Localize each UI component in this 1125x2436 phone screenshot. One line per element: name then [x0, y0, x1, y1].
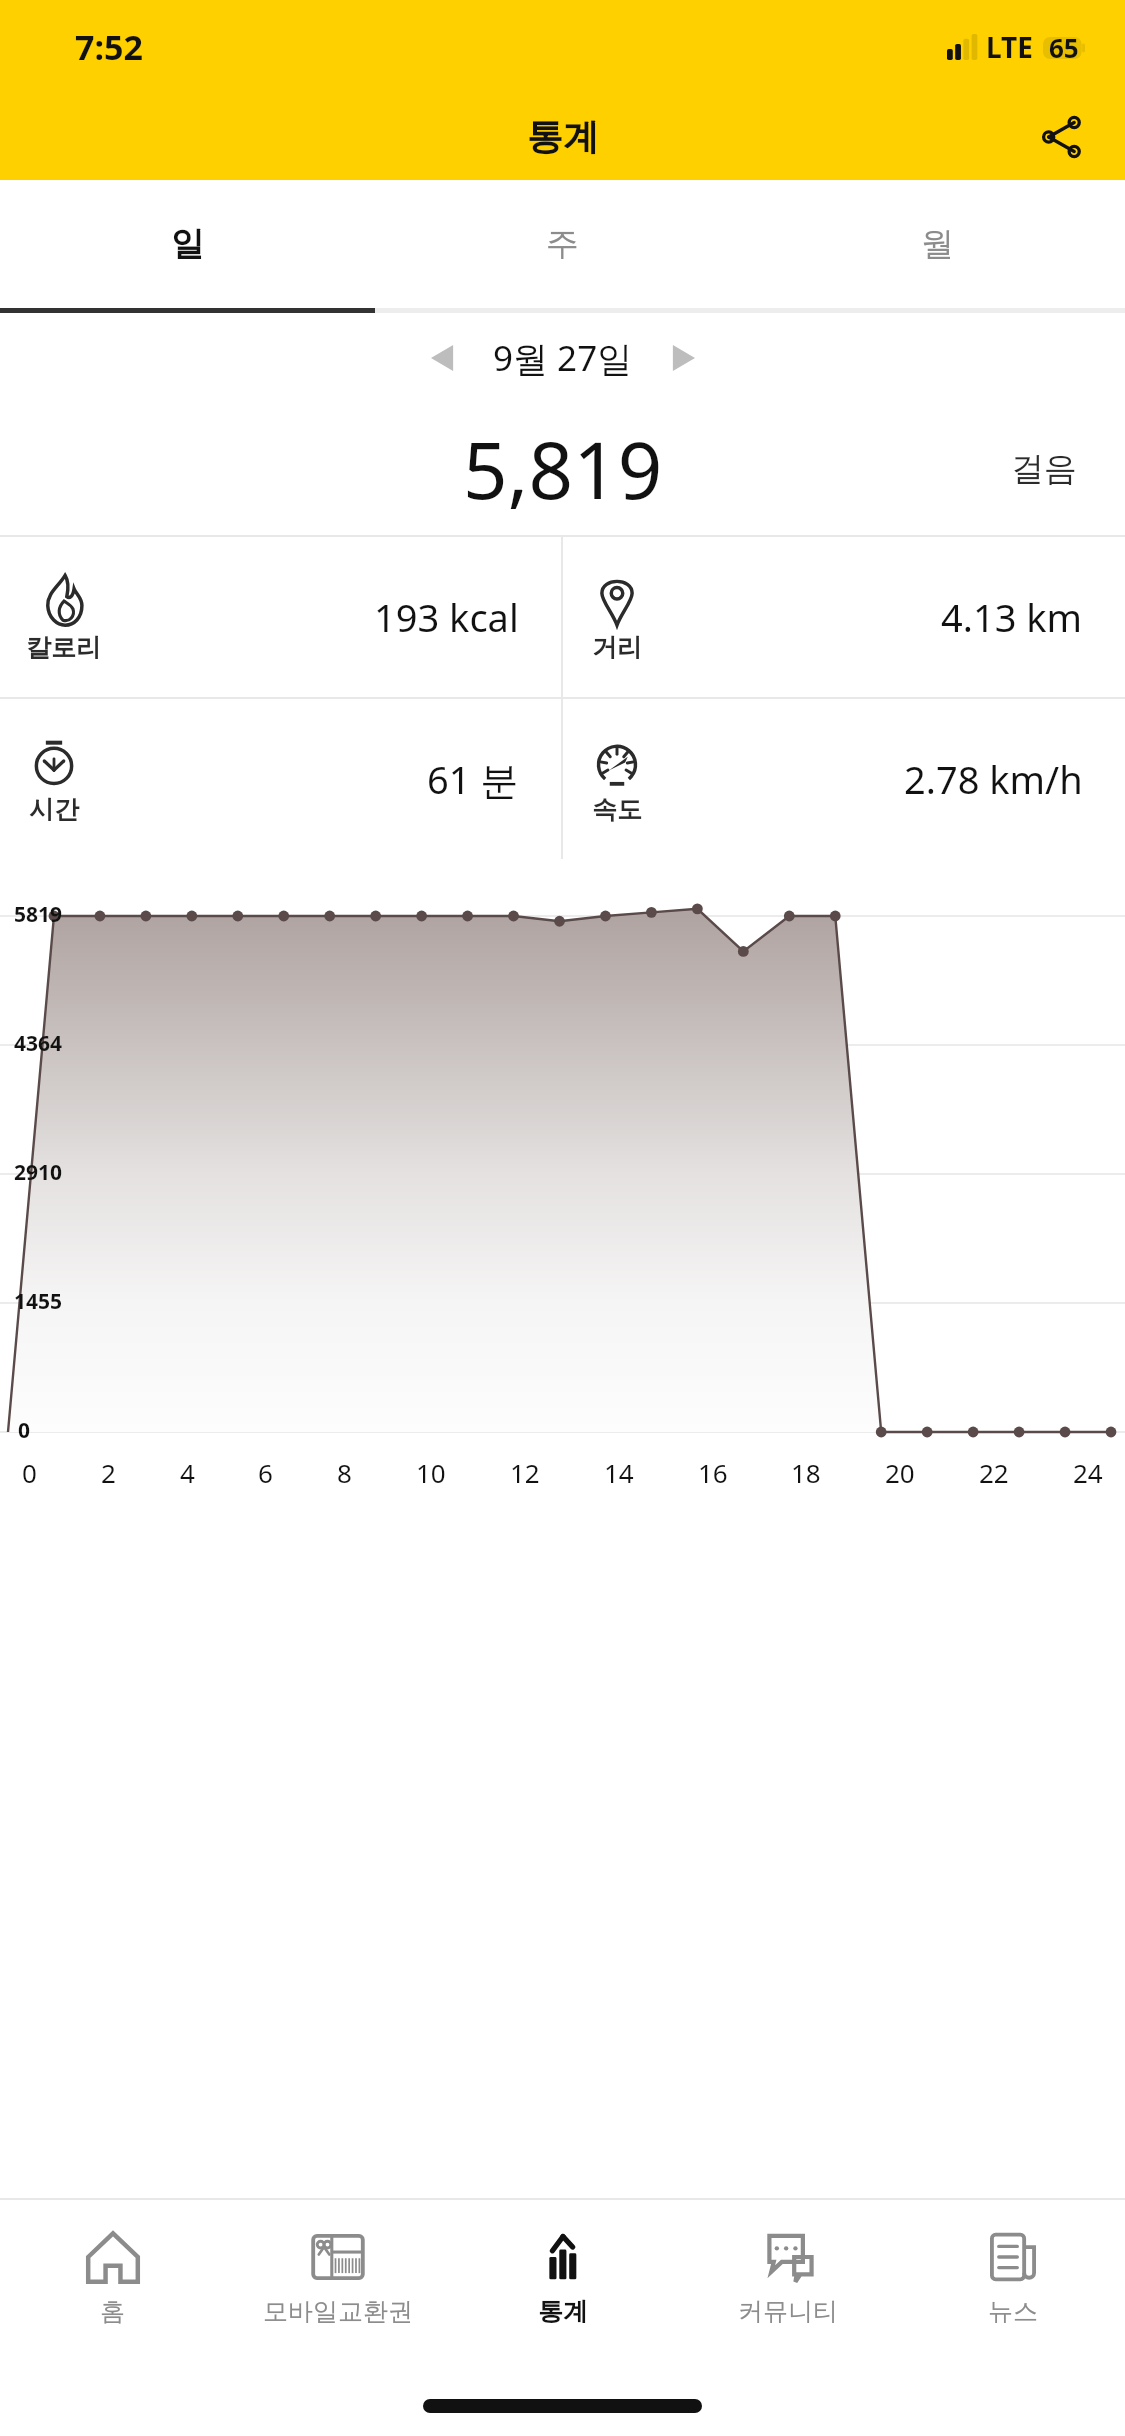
- staticText: 2.78 km/h: [904, 753, 1083, 805]
- button[interactable]: 거리: [563, 537, 1125, 697]
- staticText: 일: [171, 223, 204, 265]
- staticText: 193 kcal: [374, 591, 519, 643]
- staticText: 6: [258, 1455, 273, 1490]
- staticText: 2910: [14, 1158, 63, 1187]
- staticText: 칼로리: [26, 632, 101, 663]
- button[interactable]: 모바일교환권: [225, 2200, 450, 2360]
- staticText: 걸음: [1011, 448, 1077, 490]
- button[interactable]: 커뮤니티: [675, 2200, 900, 2360]
- staticText: 4364: [14, 1029, 63, 1058]
- staticText: 61 분: [427, 753, 519, 805]
- staticText: 뉴스: [988, 2296, 1038, 2327]
- staticText: 4.13 km: [941, 591, 1083, 643]
- staticText: 1455: [14, 1287, 63, 1316]
- staticText: 7:52: [75, 24, 143, 70]
- button[interactable]: 시간: [0, 699, 561, 859]
- staticText: 홈: [100, 2296, 125, 2327]
- staticText: 12: [510, 1455, 540, 1490]
- staticText: 통계: [527, 114, 599, 159]
- staticText: 5,819: [463, 416, 663, 522]
- button[interactable]: 칼로리: [0, 537, 561, 697]
- button[interactable]: 주: [375, 180, 750, 308]
- button[interactable]: 통계: [450, 2200, 675, 2360]
- staticText: 22: [979, 1455, 1009, 1490]
- button[interactable]: 월: [750, 180, 1125, 308]
- button[interactable]: 속도: [563, 699, 1125, 859]
- staticText: 65: [1049, 30, 1079, 65]
- staticText: 10: [416, 1455, 446, 1490]
- staticText: 8: [337, 1455, 352, 1490]
- staticText: 9월 27일: [493, 334, 633, 382]
- staticText: 18: [791, 1455, 821, 1490]
- staticText: 4: [180, 1455, 195, 1490]
- button[interactable]: Share: [1025, 101, 1097, 173]
- staticText: 5819: [14, 900, 63, 929]
- staticText: 20: [885, 1455, 915, 1490]
- staticText: 2: [101, 1455, 116, 1490]
- button[interactable]: Next day: [647, 323, 717, 393]
- staticText: LTE: [986, 28, 1033, 66]
- button[interactable]: Previous day: [409, 323, 479, 393]
- staticText: 월: [921, 223, 954, 265]
- staticText: 통계: [538, 2296, 588, 2327]
- staticText: 주: [546, 223, 579, 265]
- staticText: 거리: [592, 632, 642, 663]
- staticText: 시간: [29, 794, 79, 825]
- staticText: 16: [698, 1455, 728, 1490]
- staticText: 24: [1073, 1455, 1103, 1490]
- staticText: 커뮤니티: [738, 2296, 838, 2327]
- button[interactable]: 홈: [0, 2200, 225, 2360]
- staticText: 모바일교환권: [263, 2296, 413, 2327]
- staticText: 0: [22, 1455, 37, 1490]
- button[interactable]: 일: [0, 180, 375, 308]
- staticText: 0: [18, 1416, 31, 1445]
- button[interactable]: 뉴스: [900, 2200, 1125, 2360]
- staticText: 속도: [592, 794, 642, 825]
- staticText: 14: [604, 1455, 634, 1490]
